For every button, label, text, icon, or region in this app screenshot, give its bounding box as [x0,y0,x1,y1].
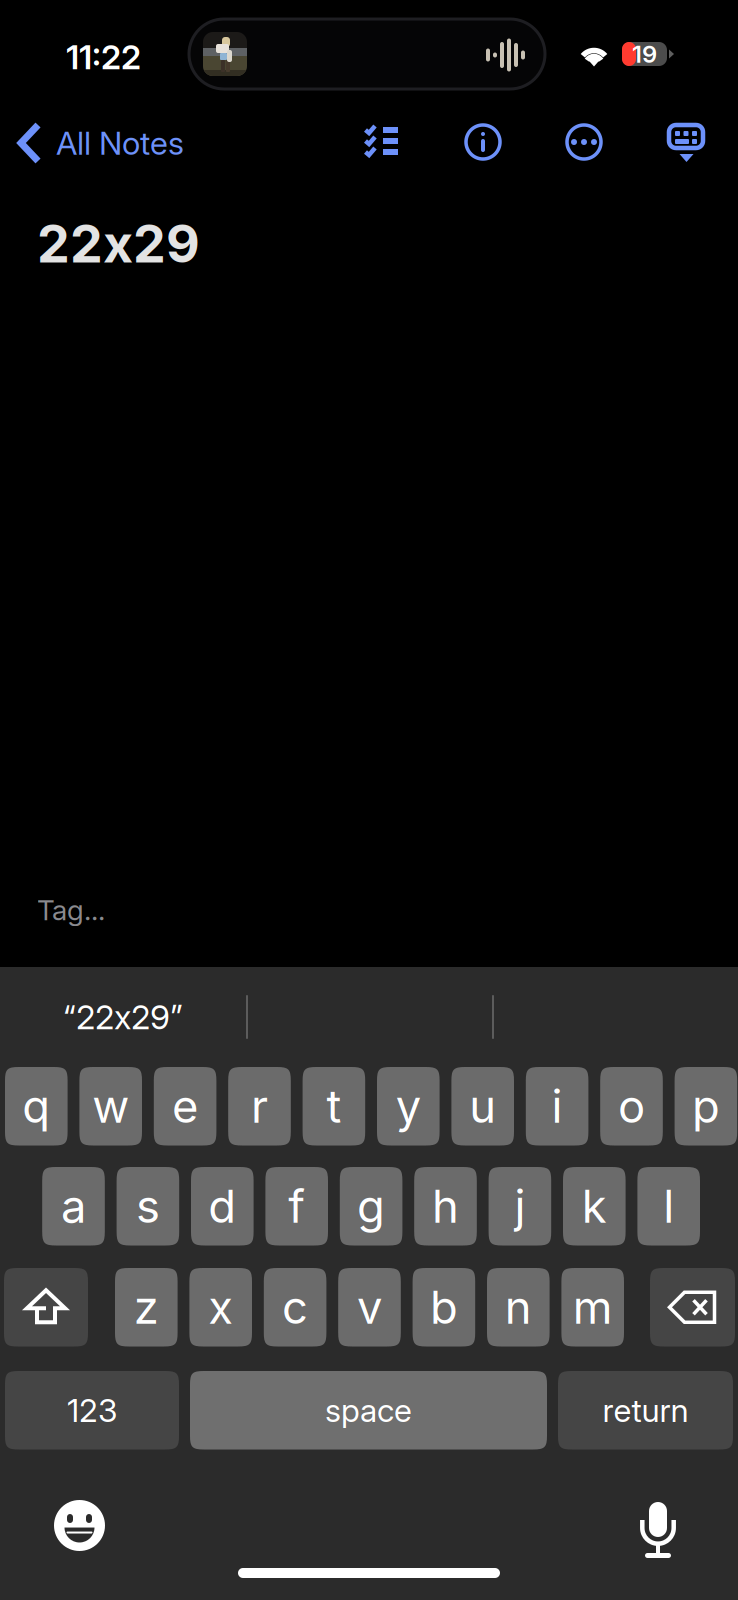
staticText: h [432,1179,459,1234]
staticText: n [505,1280,532,1335]
button[interactable]: return [558,1371,733,1449]
button[interactable]: l [637,1167,700,1245]
staticText: k [582,1179,607,1234]
staticText: z [134,1280,159,1335]
staticText: r [251,1079,268,1134]
button[interactable]: n [487,1268,550,1346]
staticText: x [114,997,131,1037]
staticText: u [469,1079,496,1134]
staticText: x [103,212,133,275]
staticText: o [618,1079,645,1134]
button[interactable]: c [264,1268,326,1346]
staticText: 29 [133,212,200,275]
staticText: w [92,1079,129,1134]
button[interactable]: Shift [4,1268,88,1346]
button[interactable]: j [489,1167,551,1245]
staticText: m [573,1280,613,1335]
button[interactable]: “ [0,967,246,1067]
staticText: 123 [67,1391,117,1430]
staticText: “ [63,997,76,1037]
staticText: q [22,1079,50,1134]
staticText: i [552,1079,563,1134]
button[interactable]: w [79,1067,142,1145]
staticText: l [663,1179,674,1234]
staticText: d [208,1179,236,1234]
staticText: space [325,1391,412,1430]
staticText: f [288,1179,305,1234]
button[interactable]: i [526,1067,588,1145]
button[interactable]: x [189,1268,252,1346]
button[interactable]: f [265,1167,328,1245]
staticText: s [136,1179,160,1234]
button[interactable]: Emoji [54,1500,105,1551]
button[interactable]: v [338,1268,401,1346]
staticText: v [357,1280,382,1335]
staticText: All Notes [56,124,184,162]
button[interactable]: k [563,1167,626,1245]
button[interactable]: z [115,1268,178,1346]
staticText: 11:22 [66,37,141,77]
button[interactable]: Info [466,125,500,159]
button[interactable]: o [600,1067,663,1145]
button[interactable]: t [303,1067,365,1145]
button[interactable]: space [190,1371,547,1449]
staticText: t [326,1079,341,1134]
button[interactable]: p [675,1067,737,1145]
button[interactable]: Checklist [364,126,398,156]
staticText: g [357,1179,385,1234]
staticText: return [602,1391,688,1430]
staticText: e [172,1079,198,1134]
staticText: 19 [632,39,657,68]
button[interactable]: Dictation [640,1496,676,1554]
button[interactable]: Hide Keyboard [669,125,703,163]
staticText: p [692,1079,720,1134]
staticText: 22 [76,997,114,1037]
staticText: x [208,1280,233,1335]
staticText: ” [170,997,183,1037]
staticText: y [396,1079,421,1134]
button[interactable]: g [340,1167,402,1245]
button[interactable]: b [413,1268,475,1346]
staticText: 22 [37,212,103,275]
staticText: c [282,1280,308,1335]
button[interactable]: More Options [567,125,601,159]
button[interactable]: d [191,1167,254,1245]
button[interactable]: All Notes [0,112,184,174]
button[interactable]: h [414,1167,477,1245]
staticText: b [430,1280,458,1335]
button[interactable]: s [117,1167,179,1245]
button[interactable]: m [561,1268,624,1346]
button[interactable]: e [154,1067,216,1145]
staticText: a [61,1179,86,1234]
button[interactable]: u [451,1067,514,1145]
staticText: Tag... [37,893,105,927]
button[interactable]: q [5,1067,68,1145]
button[interactable]: Delete [650,1268,735,1346]
staticText: 29 [131,997,170,1037]
button[interactable]: y [377,1067,440,1145]
button[interactable]: r [228,1067,291,1145]
button[interactable]: a [42,1167,105,1245]
button[interactable]: 123 [5,1371,179,1449]
staticText: j [514,1179,525,1234]
